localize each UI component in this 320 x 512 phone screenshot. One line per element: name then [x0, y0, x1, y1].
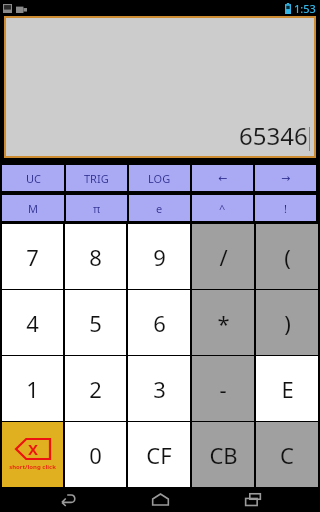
staticText: -	[219, 374, 227, 404]
button[interactable]: 1	[2, 356, 63, 421]
button[interactable]: Back	[43, 487, 93, 512]
button[interactable]: CB	[192, 422, 254, 487]
button[interactable]: Recent apps	[228, 487, 278, 512]
button[interactable]: E	[256, 356, 318, 421]
button[interactable]: e	[129, 195, 190, 221]
button[interactable]: π	[66, 195, 127, 221]
staticText: !	[284, 201, 287, 216]
staticText: 65346	[239, 119, 308, 152]
staticText: 1	[26, 374, 39, 404]
staticText: 3	[153, 374, 166, 404]
staticText: (	[284, 242, 291, 272]
staticText: E	[281, 374, 294, 404]
staticText: 5	[89, 308, 102, 338]
button[interactable]: 0	[65, 422, 126, 487]
staticText: X	[28, 439, 39, 459]
button[interactable]: 2	[65, 356, 126, 421]
staticText: C	[280, 440, 294, 470]
button[interactable]: 3	[128, 356, 190, 421]
button[interactable]: 6	[128, 290, 190, 355]
staticText: 2	[89, 374, 102, 404]
button[interactable]: UC	[2, 165, 64, 191]
staticText: )	[284, 308, 291, 338]
button[interactable]: LOG	[129, 165, 190, 191]
button[interactable]: !	[255, 195, 316, 221]
button[interactable]: 4	[2, 290, 63, 355]
button[interactable]: 9	[128, 224, 190, 289]
button[interactable]: CF	[128, 422, 190, 487]
staticText: →	[281, 172, 291, 185]
staticText: CF	[146, 440, 172, 470]
staticText: ←	[218, 172, 228, 185]
staticText: LOG	[148, 171, 171, 186]
button[interactable]: 5	[65, 290, 126, 355]
staticText: 6	[153, 308, 166, 338]
button[interactable]: ^	[192, 195, 253, 221]
staticText: 7	[26, 242, 39, 272]
button[interactable]: ←	[192, 165, 253, 191]
staticText: M	[28, 201, 38, 216]
button[interactable]: →	[255, 165, 316, 191]
staticText: *	[217, 308, 230, 338]
button[interactable]: C	[256, 422, 318, 487]
button[interactable]: -	[192, 356, 254, 421]
button[interactable]: 8	[65, 224, 126, 289]
staticText: short/long click	[9, 463, 56, 471]
staticText: /	[219, 242, 228, 272]
button[interactable]: Delete, short or long click	[2, 422, 63, 487]
button[interactable]: )	[256, 290, 318, 355]
staticText: CB	[209, 440, 238, 470]
staticText: 8	[89, 242, 102, 272]
staticText: UC	[26, 171, 41, 186]
staticText: 0	[89, 440, 102, 470]
button[interactable]: (	[256, 224, 318, 289]
button[interactable]: M	[2, 195, 64, 221]
staticText: e	[156, 201, 163, 216]
button[interactable]: 7	[2, 224, 63, 289]
button[interactable]: /	[192, 224, 254, 289]
button[interactable]: *	[192, 290, 254, 355]
button[interactable]: Home	[135, 487, 185, 512]
staticText: TRIG	[84, 171, 109, 186]
staticText: 1:53	[294, 1, 316, 16]
staticText: π	[93, 201, 101, 216]
button[interactable]: TRIG	[66, 165, 127, 191]
staticText: 9	[153, 242, 166, 272]
staticText: 4	[26, 308, 39, 338]
staticText: ^	[219, 201, 226, 216]
